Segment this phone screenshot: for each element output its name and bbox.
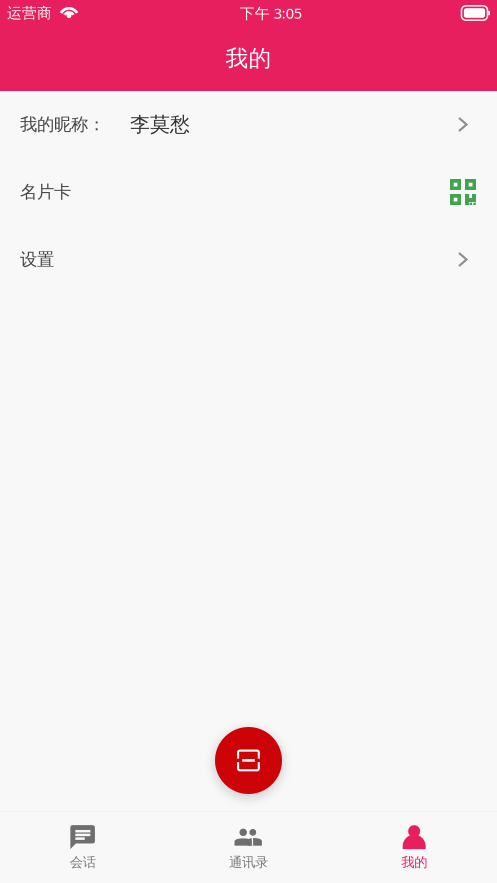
staticText: 运营商	[7, 4, 52, 22]
button[interactable]: 设置	[0, 226, 497, 293]
staticText: 我的	[401, 854, 427, 871]
staticText: 会话	[70, 854, 96, 871]
button[interactable]: 我的昵称：	[0, 91, 497, 158]
button[interactable]: 会话	[0, 812, 166, 883]
staticText: 我的昵称：	[20, 114, 105, 135]
button[interactable]: 新建	[215, 727, 282, 794]
button[interactable]: 名片卡	[0, 158, 497, 225]
staticText: 李莫愁	[130, 112, 190, 137]
button[interactable]: 通讯录	[166, 812, 331, 883]
staticText: 通讯录	[229, 854, 268, 871]
staticText: 我的	[225, 45, 271, 72]
staticText: 设置	[20, 249, 54, 270]
button[interactable]: 我的	[331, 812, 497, 883]
staticText: 下午 3:05	[240, 3, 302, 23]
staticText: 名片卡	[20, 181, 71, 203]
